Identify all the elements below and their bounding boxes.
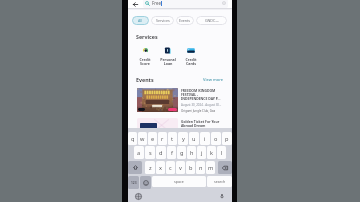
button[interactable]: Events bbox=[176, 16, 194, 25]
staticText: d bbox=[159, 149, 163, 157]
button[interactable]: Shift bbox=[128, 161, 142, 174]
button[interactable]: e bbox=[148, 132, 157, 145]
button[interactable]: Credit Cards bbox=[181, 46, 201, 66]
staticText: q bbox=[131, 135, 135, 143]
button[interactable]: c bbox=[166, 161, 175, 174]
button[interactable]: space bbox=[152, 176, 206, 187]
button[interactable]: o bbox=[211, 132, 221, 145]
staticText: j bbox=[201, 149, 203, 157]
button[interactable]: Change keyboard bbox=[134, 192, 142, 200]
staticText: s bbox=[149, 149, 152, 157]
staticText: t bbox=[171, 135, 174, 143]
button[interactable]: l bbox=[217, 146, 226, 159]
button[interactable]: k bbox=[207, 146, 216, 159]
button[interactable]: g bbox=[177, 146, 186, 159]
button[interactable]: m bbox=[206, 161, 215, 174]
staticText: z bbox=[149, 164, 152, 172]
button[interactable]: q bbox=[128, 132, 137, 145]
button[interactable]: All bbox=[132, 16, 149, 25]
button[interactable]: Back bbox=[130, 0, 141, 8]
button[interactable]: FREEDOM KINGDOM FESTIVAL - INDEPENDENCE … bbox=[137, 88, 231, 113]
staticText: o bbox=[214, 135, 218, 143]
staticText: m bbox=[208, 164, 214, 172]
staticText: w bbox=[140, 135, 145, 143]
staticText: i bbox=[204, 135, 206, 143]
button[interactable]: Emoji bbox=[140, 176, 151, 189]
staticText: p bbox=[225, 135, 229, 143]
staticText: u bbox=[192, 135, 196, 143]
staticText: Golden Ticket For Your Abroad Dream bbox=[181, 119, 220, 128]
staticText: Free bbox=[152, 0, 161, 6]
button[interactable]: r bbox=[158, 132, 167, 145]
button[interactable]: v bbox=[176, 161, 185, 174]
staticText: Origami Jungle Club, Goa bbox=[181, 109, 216, 113]
staticText: k bbox=[210, 149, 213, 157]
button[interactable]: Backspace bbox=[218, 161, 232, 174]
staticText: search bbox=[214, 179, 226, 184]
button[interactable]: x bbox=[156, 161, 165, 174]
staticText: Personal Loan bbox=[158, 57, 178, 66]
button[interactable]: h bbox=[187, 146, 196, 159]
staticText: v bbox=[179, 164, 182, 172]
button[interactable]: View more bbox=[203, 77, 224, 82]
staticText: x bbox=[159, 164, 162, 172]
button[interactable]: GNDC— bbox=[196, 16, 227, 25]
staticText: b bbox=[189, 164, 193, 172]
button[interactable]: y bbox=[178, 132, 188, 145]
staticText: h bbox=[190, 149, 194, 157]
staticText: All bbox=[138, 18, 143, 23]
staticText: Services bbox=[136, 33, 158, 40]
staticText: e bbox=[151, 135, 155, 143]
button[interactable]: p bbox=[222, 132, 232, 145]
button[interactable]: u bbox=[189, 132, 199, 145]
staticText: a bbox=[137, 149, 141, 157]
button[interactable]: Personal Loan bbox=[158, 46, 178, 66]
button[interactable]: Voice input bbox=[218, 192, 226, 200]
staticText: r bbox=[161, 135, 164, 143]
staticText: 123 bbox=[131, 181, 137, 185]
button[interactable]: search bbox=[207, 176, 232, 187]
button[interactable]: s bbox=[145, 146, 155, 159]
button[interactable]: w bbox=[138, 132, 147, 145]
staticText: GNDC— bbox=[205, 18, 219, 23]
button[interactable]: i bbox=[200, 132, 210, 145]
button[interactable]: Numbers bbox=[128, 176, 139, 189]
button[interactable]: Services bbox=[151, 16, 174, 25]
staticText: Events bbox=[179, 18, 191, 23]
staticText: Credit Score bbox=[135, 57, 155, 66]
button[interactable]: Free bbox=[143, 0, 228, 8]
staticText: n bbox=[199, 164, 203, 172]
staticText: FREEDOM KINGDOM FESTIVAL - INDEPENDENCE … bbox=[181, 88, 221, 101]
staticText: g bbox=[180, 149, 184, 157]
button[interactable]: n bbox=[196, 161, 205, 174]
button[interactable]: j bbox=[197, 146, 206, 159]
button[interactable]: f bbox=[167, 146, 176, 159]
staticText: Services bbox=[156, 18, 170, 23]
staticText: View more bbox=[203, 77, 224, 82]
button[interactable]: z bbox=[145, 161, 155, 174]
staticText: August 30, 2024 - August 30... bbox=[181, 103, 222, 107]
staticText: l bbox=[221, 149, 223, 157]
staticText: space bbox=[174, 179, 184, 184]
staticText: Events bbox=[136, 76, 154, 83]
button[interactable]: Golden Ticket For Your Abroad Dream bbox=[137, 118, 231, 142]
button[interactable]: a bbox=[134, 146, 144, 159]
staticText: c bbox=[169, 164, 172, 172]
button[interactable]: d bbox=[156, 146, 166, 159]
button[interactable]: t bbox=[168, 132, 177, 145]
button[interactable]: Credit Score bbox=[135, 46, 155, 66]
staticText: Credit Cards bbox=[181, 57, 201, 66]
staticText: f bbox=[171, 149, 173, 157]
button[interactable]: b bbox=[186, 161, 195, 174]
staticText: y bbox=[182, 135, 185, 143]
